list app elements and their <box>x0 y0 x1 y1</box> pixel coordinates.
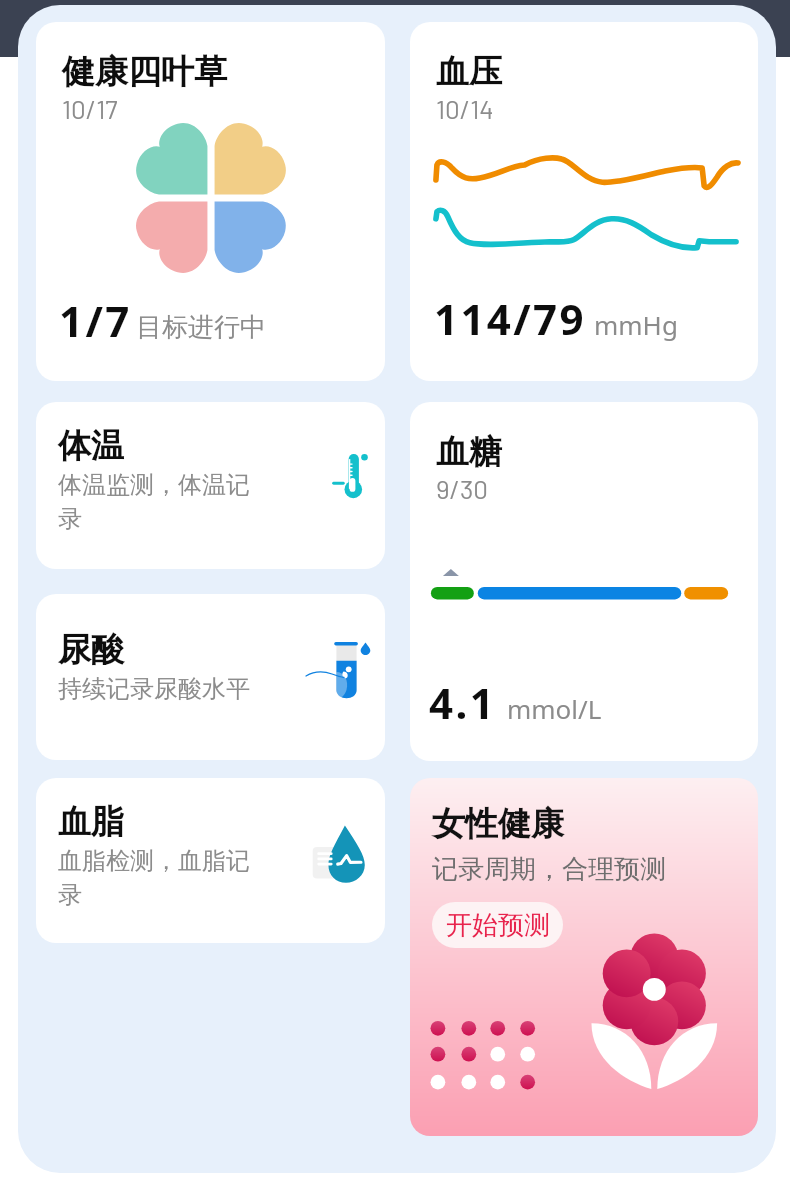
staticText: 体温监测，体温记录 <box>58 470 266 535</box>
staticText: 记录周期，合理预测 <box>432 853 666 886</box>
staticText: 血脂检测，血脂记录 <box>58 846 266 911</box>
button[interactable]: 体温 <box>36 402 385 569</box>
staticText: 尿酸 <box>58 629 124 671</box>
button[interactable]: 开始预测 <box>432 902 563 948</box>
button[interactable]: 健康四叶草 <box>36 22 385 381</box>
button[interactable]: 血糖 <box>410 402 758 761</box>
staticText: 血糖 <box>436 431 502 473</box>
other: 血脂 <box>310 822 368 886</box>
staticText: 4.1 <box>429 674 497 731</box>
staticText: 血脂 <box>58 801 124 843</box>
staticText: 开始预测 <box>446 909 550 942</box>
staticText: mmHg <box>594 307 678 342</box>
staticText: 女性健康 <box>432 803 564 845</box>
button[interactable]: 尿酸 <box>36 594 385 760</box>
button[interactable]: 血压 <box>410 22 758 381</box>
button[interactable]: 血脂 <box>36 778 385 943</box>
staticText: 114/79 <box>434 290 586 347</box>
staticText: 健康四叶草 <box>62 51 227 93</box>
staticText: 持续记录尿酸水平 <box>58 674 250 704</box>
staticText: 10/17 <box>62 93 118 124</box>
staticText: 体温 <box>58 425 124 467</box>
button[interactable]: 女性健康 <box>410 778 758 1136</box>
staticText: 9/30 <box>436 473 489 504</box>
staticText: 目标进行中 <box>136 311 266 344</box>
staticText: 1/7 <box>59 292 132 349</box>
staticText: mmol/L <box>507 691 602 726</box>
staticText: 血压 <box>436 51 502 93</box>
staticText: 10/14 <box>436 93 494 124</box>
other: 体温 <box>326 447 376 502</box>
other: 尿酸 <box>330 638 375 704</box>
